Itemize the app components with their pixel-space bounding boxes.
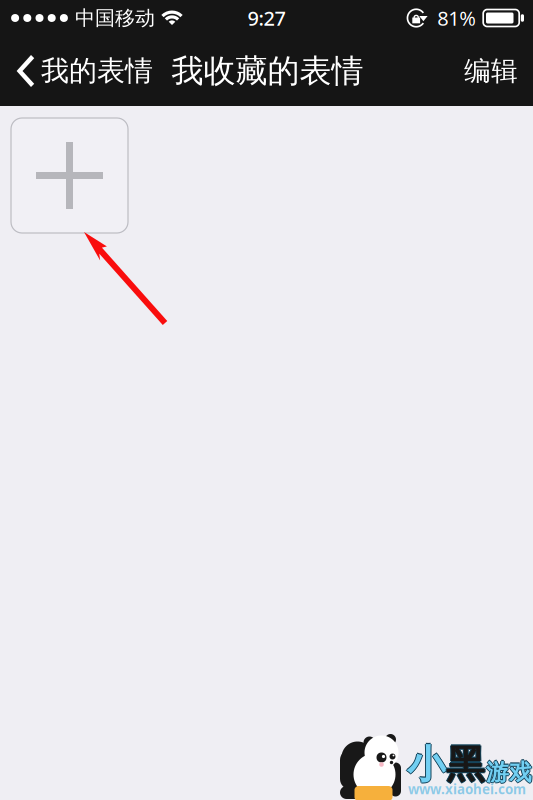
staticText: 9:27 bbox=[247, 5, 285, 31]
staticText: 黑 bbox=[445, 741, 484, 788]
staticText: 我收藏的表情 bbox=[171, 51, 363, 91]
staticText: 黑 bbox=[446, 741, 485, 788]
staticText: 游戏 bbox=[486, 757, 532, 785]
staticText: 81% bbox=[437, 5, 476, 31]
staticText: 小 bbox=[408, 741, 447, 788]
staticText: 黑 bbox=[446, 740, 485, 787]
button[interactable]: Add sticker bbox=[11, 118, 128, 233]
staticText: 编辑 bbox=[464, 55, 518, 87]
staticText: 游戏 bbox=[485, 758, 531, 786]
button[interactable]: 我的表情 bbox=[0, 45, 165, 97]
staticText: 游戏 bbox=[486, 758, 532, 786]
button[interactable]: 编辑 bbox=[448, 43, 533, 99]
staticText: 黑 bbox=[447, 741, 486, 788]
staticText: 小 bbox=[407, 740, 446, 787]
staticText: www.xiaohei.com bbox=[408, 780, 526, 798]
staticText: 小 bbox=[407, 742, 446, 789]
staticText: 我的表情 bbox=[41, 54, 153, 88]
staticText: 小 bbox=[407, 741, 446, 788]
staticText: 小 bbox=[406, 741, 445, 788]
staticText: 游戏 bbox=[487, 758, 533, 786]
staticText: 游戏 bbox=[486, 760, 532, 787]
staticText: 中国移动 bbox=[75, 6, 155, 30]
staticText: 黑 bbox=[446, 742, 485, 789]
